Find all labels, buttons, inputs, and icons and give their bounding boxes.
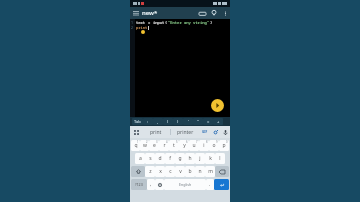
button[interactable]: e <box>149 140 159 151</box>
staticText: ( <box>165 20 168 25</box>
button[interactable]: t <box>169 140 179 151</box>
button[interactable]: Open file <box>196 7 208 19</box>
button[interactable]: j <box>195 153 205 164</box>
staticText: 9 <box>216 140 218 144</box>
staticText: GIF <box>202 130 208 134</box>
staticText: f <box>169 155 171 162</box>
button[interactable]: z <box>145 166 155 177</box>
button[interactable]: s <box>145 153 155 164</box>
staticText: . <box>209 181 211 188</box>
staticText: ) <box>210 20 213 25</box>
staticText: c <box>169 168 172 175</box>
button[interactable]: ) <box>173 118 183 125</box>
button[interactable]: ?123 <box>131 179 147 190</box>
staticText: + <box>217 119 220 124</box>
staticText: "Enter any string" <box>168 20 210 25</box>
button[interactable]: c <box>165 166 175 177</box>
button[interactable]: Comma <box>147 179 155 190</box>
button[interactable]: l <box>215 153 225 164</box>
staticText: p <box>222 142 226 149</box>
staticText: x <box>159 168 162 175</box>
staticText: Tab <box>134 119 141 124</box>
staticText: ) <box>177 119 179 124</box>
button[interactable]: Menu <box>130 7 142 19</box>
button[interactable]: Run script <box>211 99 224 112</box>
staticText: new* <box>142 9 158 17</box>
button[interactable]: q <box>131 140 140 151</box>
staticText: ( <box>167 119 169 124</box>
button[interactable]: n <box>195 166 205 177</box>
staticText: a <box>139 155 142 162</box>
staticText: s <box>149 155 152 162</box>
staticText: text <box>136 20 148 25</box>
staticText: w <box>143 142 147 149</box>
button[interactable]: h <box>185 153 195 164</box>
staticText: print <box>150 129 162 136</box>
button[interactable]: Backspace <box>215 166 229 177</box>
button[interactable]: m <box>205 166 215 177</box>
staticText: v <box>179 168 182 175</box>
button[interactable]: Tab <box>132 118 143 125</box>
button[interactable]: f <box>165 153 175 164</box>
staticText: j <box>199 155 201 162</box>
button[interactable]: ( <box>163 118 173 125</box>
button[interactable]: p <box>219 140 229 151</box>
button[interactable]: o <box>209 140 219 151</box>
staticText: 7 <box>196 140 198 144</box>
button[interactable]: d <box>155 153 165 164</box>
button[interactable]: = <box>203 118 213 125</box>
button[interactable]: a <box>135 153 145 164</box>
button[interactable]: y <box>179 140 189 151</box>
staticText: 1 <box>137 140 139 144</box>
button[interactable]: b <box>185 166 195 177</box>
button[interactable]: Voice input <box>220 127 230 137</box>
staticText: printer <box>177 129 194 136</box>
staticText: ?123 <box>135 182 143 187</box>
button[interactable]: ' <box>183 118 193 125</box>
button[interactable]: Enter <box>214 179 229 190</box>
button[interactable]: Settings <box>210 127 220 137</box>
button[interactable]: Emoji <box>155 179 164 190</box>
staticText: z <box>149 168 152 175</box>
button[interactable]: , <box>153 118 163 125</box>
button[interactable]: Run <box>208 7 220 19</box>
staticText: , <box>150 181 152 188</box>
button[interactable]: More options <box>220 8 230 18</box>
staticText: " <box>197 119 199 124</box>
staticText: 1 <box>131 20 134 25</box>
button[interactable]: w <box>140 140 149 151</box>
button[interactable]: u <box>189 140 199 151</box>
staticText: u <box>192 142 196 149</box>
staticText: print <box>136 25 148 30</box>
staticText: 2 <box>146 140 148 144</box>
button[interactable]: printer <box>171 129 200 136</box>
staticText: t <box>173 142 175 149</box>
staticText: 0 <box>226 140 228 144</box>
button[interactable]: Clipboard <box>130 126 142 138</box>
button[interactable]: English <box>164 179 206 190</box>
staticText: : <box>147 119 149 124</box>
button[interactable]: r <box>159 140 169 151</box>
button[interactable]: + <box>213 118 223 125</box>
button[interactable]: x <box>155 166 165 177</box>
button[interactable]: v <box>175 166 185 177</box>
staticText: 5 <box>176 140 178 144</box>
button[interactable]: k <box>205 153 215 164</box>
staticText: = <box>207 119 210 124</box>
button[interactable]: : <box>143 118 153 125</box>
staticText: h <box>188 155 192 162</box>
button[interactable]: Period <box>206 179 214 190</box>
staticText: i <box>203 142 205 149</box>
button[interactable]: i <box>199 140 209 151</box>
button[interactable]: Shift <box>131 166 145 177</box>
button[interactable]: g <box>175 153 185 164</box>
staticText: m <box>208 168 213 175</box>
staticText: 2 <box>131 25 134 30</box>
staticText: input <box>153 20 165 25</box>
button[interactable]: print <box>142 129 170 136</box>
staticText: y <box>183 142 186 149</box>
button[interactable]: GIF <box>200 127 210 137</box>
staticText: 8 <box>206 140 208 144</box>
staticText: q <box>134 142 138 149</box>
button[interactable]: " <box>193 118 203 125</box>
